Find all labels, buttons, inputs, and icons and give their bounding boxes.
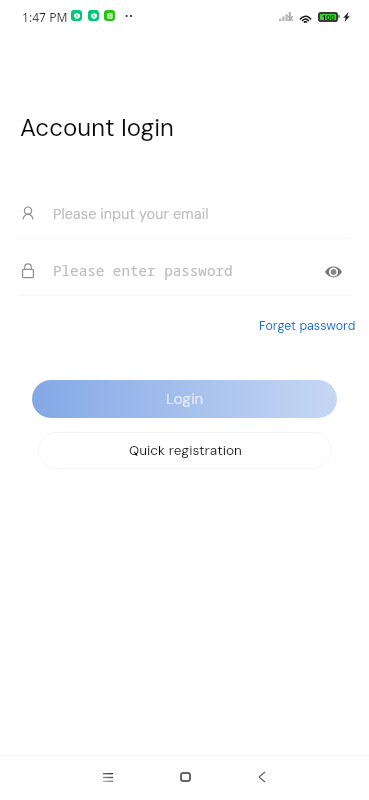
button[interactable]: Quick registration bbox=[38, 432, 332, 469]
button[interactable]: Forget password bbox=[251, 312, 364, 340]
staticText: 100 bbox=[322, 12, 335, 22]
button[interactable]: Home bbox=[165, 757, 205, 797]
button[interactable]: Show password bbox=[321, 255, 351, 285]
staticText: Please enter password bbox=[53, 261, 321, 280]
staticText: Forget password bbox=[259, 318, 356, 334]
staticText: Please input your email bbox=[53, 205, 209, 224]
button[interactable]: Recent apps bbox=[88, 757, 128, 797]
button[interactable]: Back bbox=[242, 757, 282, 797]
staticText: 1:47 PM bbox=[22, 9, 68, 25]
staticText: Account login bbox=[20, 112, 174, 143]
button[interactable]: Login bbox=[32, 380, 337, 418]
staticText: Login bbox=[166, 389, 204, 409]
staticText: Quick registration bbox=[129, 442, 242, 460]
button[interactable]: Please input your email bbox=[22, 194, 351, 234]
button[interactable]: Please enter password bbox=[22, 250, 351, 290]
